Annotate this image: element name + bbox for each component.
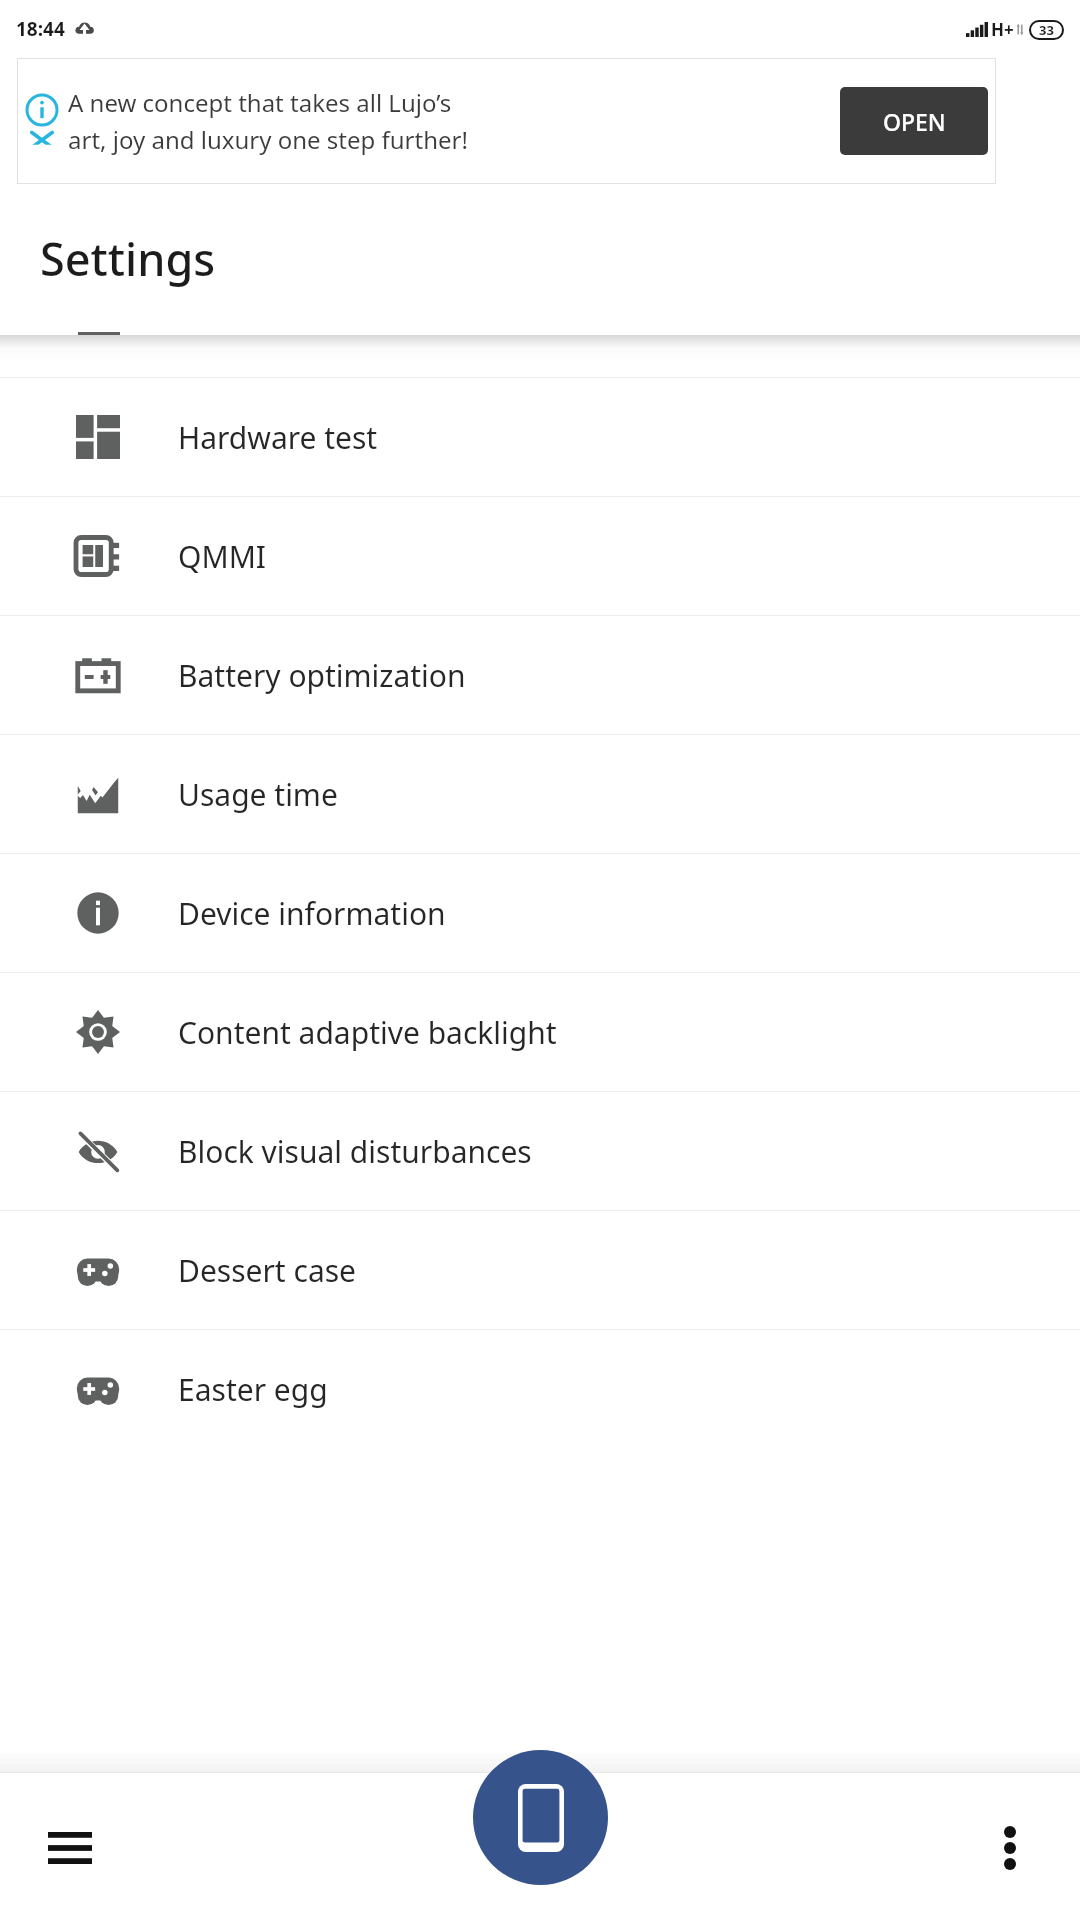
- button[interactable]: Device: [473, 1750, 608, 1885]
- button[interactable]: OPEN: [840, 87, 988, 155]
- staticText: A new concept that takes all Lujo’s: [68, 86, 452, 119]
- button[interactable]: Ad information: [23, 91, 61, 129]
- button[interactable]: Close ad: [23, 129, 61, 151]
- staticText: 33: [1039, 21, 1054, 39]
- staticText: Content adaptive backlight: [178, 1012, 557, 1053]
- button[interactable]: Battery optimization: [0, 616, 1080, 734]
- button[interactable]: Content adaptive backlight: [0, 973, 1080, 1091]
- staticText: H+: [991, 18, 1014, 41]
- button[interactable]: Device information: [0, 854, 1080, 972]
- staticText: art, joy and luxury one step further!: [68, 123, 468, 156]
- button[interactable]: QMMI: [0, 497, 1080, 615]
- button[interactable]: Usage time: [0, 735, 1080, 853]
- button[interactable]: Easter egg: [0, 1330, 1080, 1448]
- staticText: OPEN: [883, 106, 946, 137]
- staticText: Device information: [178, 893, 446, 934]
- button[interactable]: Hardware test: [0, 378, 1080, 496]
- staticText: Dessert case: [178, 1250, 357, 1291]
- staticText: Block visual disturbances: [178, 1131, 532, 1172]
- button[interactable]: Ad information: [17, 58, 996, 184]
- staticText: 18:44: [16, 16, 65, 42]
- staticText: Hardware test: [178, 417, 378, 458]
- button[interactable]: More options: [966, 1804, 1054, 1892]
- button[interactable]: Block visual disturbances: [0, 1092, 1080, 1210]
- staticText: Usage time: [178, 774, 338, 815]
- staticText: Battery optimization: [178, 655, 466, 696]
- button[interactable]: Menu: [26, 1804, 114, 1892]
- button[interactable]: Dessert case: [0, 1211, 1080, 1329]
- staticText: QMMI: [178, 536, 267, 577]
- staticText: Settings: [40, 228, 216, 289]
- staticText: Easter egg: [178, 1369, 328, 1410]
